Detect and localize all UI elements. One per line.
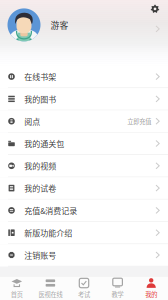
button[interactable]: 阅点 [0, 110, 168, 133]
button[interactable]: 我的视频 [0, 155, 168, 177]
button[interactable]: 充值&消费记录 [0, 200, 168, 222]
button[interactable]: 在线书架 [0, 66, 168, 88]
staticText: 充值&消费记录 [24, 205, 77, 216]
staticText: 游客 [50, 18, 68, 31]
staticText: 医视在线 [38, 290, 62, 299]
button[interactable]: 我的试卷 [0, 177, 168, 200]
button[interactable]: 注销账号 [0, 244, 168, 266]
button[interactable]: 考试 [67, 275, 101, 300]
staticText: 在线书架 [24, 71, 56, 82]
staticText: 考试 [78, 290, 90, 299]
button[interactable]: 我的图书 [0, 88, 168, 110]
staticText: 我的试卷 [24, 182, 56, 194]
staticText: 注销账号 [24, 249, 56, 261]
button[interactable]: 医视在线 [34, 275, 67, 300]
staticText: 新版功能介绍 [24, 227, 72, 238]
button[interactable]: 新版功能介绍 [0, 222, 168, 244]
button[interactable]: 游客 [0, 0, 168, 66]
button[interactable]: 我的通关包 [0, 133, 168, 155]
staticText: 教学 [112, 290, 124, 299]
button[interactable]: 我的 [134, 275, 168, 300]
staticText: 阅点 [24, 115, 40, 127]
staticText: 我的通关包 [24, 138, 64, 149]
button[interactable]: 教学 [101, 275, 134, 300]
button[interactable]: Settings [146, 0, 163, 17]
staticText: 首页 [11, 290, 23, 299]
staticText: 我的视频 [24, 160, 56, 172]
staticText: 我的图书 [24, 93, 56, 105]
staticText: 我的 [145, 290, 157, 299]
button[interactable]: 首页 [0, 275, 34, 300]
staticText: 立即充值 [127, 117, 151, 126]
